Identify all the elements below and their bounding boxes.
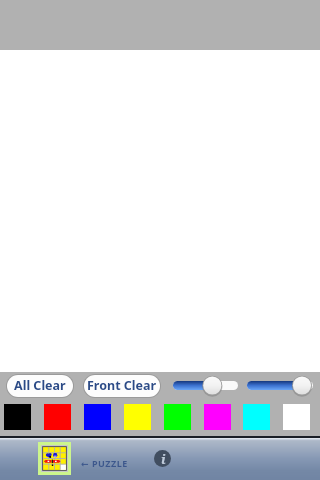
staticText: i bbox=[161, 450, 166, 467]
button[interactable]: ← PUZZLE bbox=[81, 454, 131, 472]
button[interactable]: Slider bbox=[247, 373, 313, 398]
staticText: Front Clear bbox=[87, 377, 157, 394]
staticText: All Clear bbox=[14, 377, 66, 394]
button[interactable]: Front Clear bbox=[83, 374, 161, 398]
button[interactable]: Info bbox=[154, 450, 171, 467]
button[interactable]: All Clear bbox=[6, 374, 74, 398]
button[interactable]: Slider bbox=[173, 373, 238, 398]
button[interactable]: Puzzle bbox=[38, 442, 71, 475]
staticText: ← PUZZLE bbox=[81, 457, 128, 469]
